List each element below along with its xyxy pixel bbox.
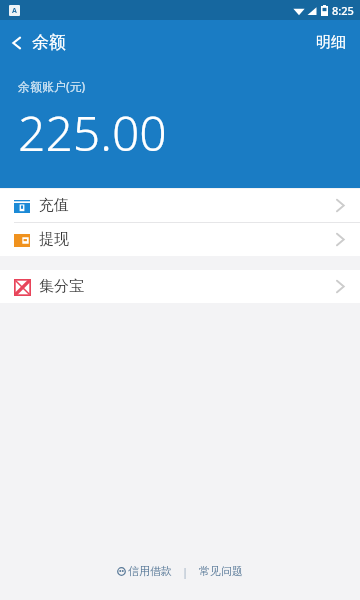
button[interactable]: 常见问题	[195, 560, 247, 582]
staticText: 常见问题	[199, 564, 243, 578]
button[interactable]: Back	[0, 26, 76, 59]
staticText: |	[182, 564, 189, 579]
staticText: 充值	[39, 196, 69, 215]
staticText: 余额	[32, 32, 66, 53]
staticText: 8:25	[332, 3, 354, 18]
button[interactable]: 信用借款	[113, 560, 176, 582]
button[interactable]: 提现	[0, 223, 360, 256]
button[interactable]: 明细	[302, 23, 360, 62]
button[interactable]: 充值	[0, 189, 360, 222]
staticText: A	[12, 6, 17, 16]
staticText: 集分宝	[39, 277, 84, 296]
staticText: 信用借款	[128, 564, 172, 578]
staticText: 提现	[39, 230, 69, 249]
button[interactable]: 集分宝	[0, 270, 360, 303]
staticText: 明细	[316, 33, 346, 52]
other: Back	[10, 36, 24, 50]
staticText: 225.00	[18, 100, 167, 165]
staticText: 余额账户(元)	[18, 78, 86, 94]
